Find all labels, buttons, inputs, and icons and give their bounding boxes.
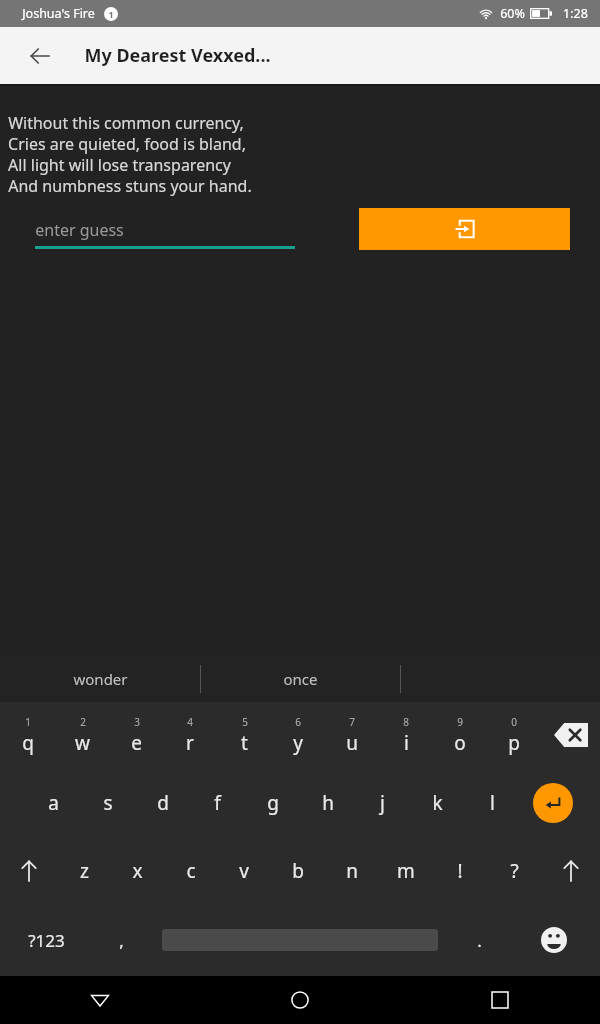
button[interactable]: Space [150, 904, 450, 976]
button[interactable]: Home [200, 976, 400, 1024]
staticText: , [119, 929, 124, 952]
button[interactable]: v [217, 838, 271, 904]
button[interactable]: 0 [487, 702, 541, 768]
staticText: ?123 [28, 929, 65, 952]
button[interactable]: z [58, 838, 111, 904]
button[interactable]: , [92, 904, 150, 976]
staticText: 6 [295, 715, 301, 729]
staticText: v [239, 858, 249, 884]
button[interactable]: 9 [433, 702, 487, 768]
staticText: enter guess [35, 219, 124, 241]
button[interactable]: g [245, 768, 300, 838]
staticText: 1 [25, 715, 31, 729]
button[interactable]: a [26, 768, 80, 838]
staticText: Without this common currency, [8, 112, 244, 133]
button[interactable]: s [80, 768, 135, 838]
staticText: h [322, 790, 334, 816]
staticText: u [346, 730, 358, 756]
staticText: t [241, 730, 248, 756]
button[interactable]: d [135, 768, 190, 838]
button[interactable]: 7 [325, 702, 379, 768]
staticText: e [131, 730, 142, 756]
button[interactable]: f [190, 768, 245, 838]
button[interactable]: Emoji [508, 904, 600, 976]
button[interactable]: l [465, 768, 520, 838]
button[interactable]: k [410, 768, 465, 838]
button[interactable]: Enter [520, 768, 586, 838]
button[interactable]: h [300, 768, 355, 838]
staticText: 4 [187, 715, 193, 729]
button[interactable]: c [164, 838, 217, 904]
button[interactable]: m [379, 838, 433, 904]
button[interactable]: 1 [0, 702, 55, 768]
staticText: d [157, 790, 169, 816]
staticText: 60% [500, 5, 525, 22]
button[interactable]: enter guess [35, 214, 295, 246]
button[interactable]: ?123 [0, 904, 92, 976]
button[interactable]: wonder [0, 656, 200, 702]
staticText: b [292, 858, 304, 884]
button[interactable]: 4 [163, 702, 217, 768]
button[interactable]: 3 [109, 702, 163, 768]
button[interactable]: Back [18, 34, 62, 78]
staticText: w [75, 730, 90, 756]
button[interactable]: Back [0, 976, 200, 1024]
staticText: z [80, 858, 89, 884]
button[interactable]: once [201, 656, 400, 702]
staticText: f [214, 790, 221, 816]
button[interactable]: 5 [217, 702, 271, 768]
staticText: 1:28 [563, 5, 588, 22]
button[interactable]: Shift [0, 838, 58, 904]
staticText: n [346, 858, 358, 884]
staticText: 1 [108, 8, 114, 20]
button[interactable]: j [355, 768, 410, 838]
staticText: Joshua's Fire [22, 5, 95, 22]
button[interactable]: b [271, 838, 325, 904]
staticText: . [477, 929, 482, 952]
button[interactable]: ? [487, 838, 541, 904]
staticText: s [103, 790, 113, 816]
button[interactable]: 8 [379, 702, 433, 768]
staticText: 7 [349, 715, 355, 729]
staticText: once [283, 669, 318, 689]
staticText: 8 [403, 715, 409, 729]
staticText: q [22, 730, 34, 756]
staticText: p [508, 730, 520, 756]
staticText: i [404, 730, 409, 756]
staticText: l [490, 790, 495, 816]
button[interactable]: n [325, 838, 379, 904]
button[interactable]: ! [433, 838, 487, 904]
staticText: My Dearest Vexxed... [84, 43, 271, 68]
staticText: 2 [80, 715, 86, 729]
staticText: 3 [134, 715, 140, 729]
staticText: And numbness stuns your hand. [8, 175, 252, 196]
staticText: o [454, 730, 466, 756]
staticText: x [132, 858, 143, 884]
staticText: a [48, 790, 59, 816]
staticText: wonder [73, 669, 128, 689]
button[interactable]: . [450, 904, 508, 976]
staticText: 9 [457, 715, 463, 729]
staticText: j [380, 790, 385, 816]
staticText: All light will lose transparency [8, 154, 231, 175]
staticText: 5 [242, 715, 248, 729]
staticText: c [186, 858, 196, 884]
staticText: y [293, 730, 303, 756]
button[interactable]: 2 [55, 702, 109, 768]
button[interactable]: Submit guess [359, 208, 570, 250]
button[interactable]: 6 [271, 702, 325, 768]
button[interactable]: Recent apps [400, 976, 600, 1024]
staticText: k [432, 790, 443, 816]
staticText: m [397, 858, 415, 884]
staticText: g [267, 790, 279, 816]
staticText: 0 [511, 715, 517, 729]
button[interactable]: Backspace [541, 702, 600, 768]
staticText: Cries are quieted, food is bland, [8, 133, 246, 154]
staticText: ! [457, 858, 463, 884]
staticText: ? [510, 858, 519, 884]
button[interactable]: x [111, 838, 164, 904]
staticText: r [186, 730, 194, 756]
button[interactable]: Shift [541, 838, 600, 904]
